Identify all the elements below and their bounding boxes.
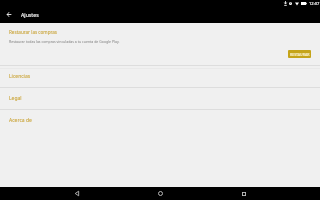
button[interactable]: Licencias (0, 66, 320, 87)
button[interactable]: Back (70, 187, 83, 200)
button[interactable]: Legal (0, 88, 320, 109)
button[interactable]: Acerca de (0, 110, 320, 131)
button[interactable]: Home (154, 187, 167, 200)
staticText: Acerca de (9, 117, 32, 124)
staticText: Ajustes (21, 11, 39, 18)
button[interactable]: Back (3, 8, 15, 20)
staticText: RESTAURAR (290, 52, 310, 57)
staticText: Restaurar las compras (9, 29, 58, 35)
staticText: Licencias (9, 73, 31, 80)
button[interactable]: Restaurar las compras (0, 23, 320, 65)
button[interactable]: Recent apps (237, 187, 250, 200)
staticText: Legal (9, 95, 22, 102)
button[interactable]: RESTAURAR (288, 50, 311, 58)
staticText: 12:07 (309, 1, 320, 7)
staticText: Restaurar todas las compras vinculadas a… (9, 39, 120, 44)
